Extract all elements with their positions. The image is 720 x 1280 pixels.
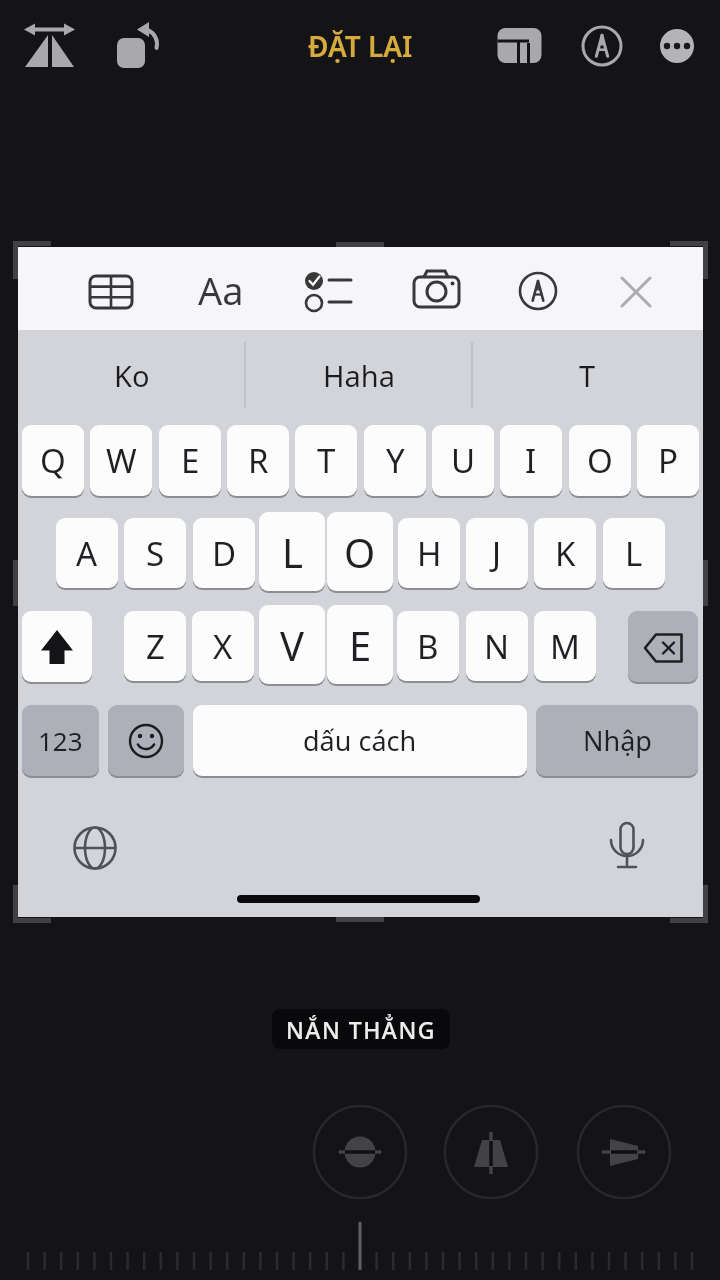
button[interactable] xyxy=(303,270,353,314)
button[interactable]: P xyxy=(637,425,699,496)
staticText: B xyxy=(417,624,439,669)
staticText: W xyxy=(106,438,137,483)
button[interactable] xyxy=(22,611,92,682)
staticText: L xyxy=(282,525,303,579)
staticText: J xyxy=(492,531,502,576)
button[interactable] xyxy=(618,274,654,310)
button[interactable]: Z xyxy=(124,611,186,681)
staticText: Aa xyxy=(198,264,244,316)
staticText: K xyxy=(555,531,576,576)
staticText: L xyxy=(625,531,643,576)
button[interactable] xyxy=(494,22,542,68)
button[interactable] xyxy=(20,20,78,72)
staticText: Haha xyxy=(323,356,395,395)
staticText: I xyxy=(525,438,537,483)
button[interactable]: B xyxy=(397,611,459,681)
button[interactable]: A xyxy=(56,518,118,588)
staticText: Q xyxy=(40,438,66,483)
button[interactable]: O xyxy=(569,425,631,496)
staticText: NẮN THẲNG xyxy=(286,1014,437,1045)
staticText: A xyxy=(76,531,98,576)
button[interactable]: U xyxy=(432,425,494,496)
staticText: ĐẶT LẠI xyxy=(308,27,413,65)
button[interactable] xyxy=(518,271,558,311)
button[interactable] xyxy=(88,272,134,312)
staticText: P xyxy=(658,438,678,483)
staticText: R xyxy=(248,438,269,483)
staticText: T xyxy=(317,438,336,483)
button[interactable] xyxy=(628,611,698,682)
button[interactable] xyxy=(582,26,622,66)
button[interactable]: NẮN THẲNG xyxy=(272,1009,450,1049)
button[interactable]: K xyxy=(534,518,596,588)
staticText: X xyxy=(213,624,233,669)
button[interactable]: E xyxy=(159,425,221,496)
button[interactable]: M xyxy=(534,611,596,681)
button[interactable]: dấu cách xyxy=(193,705,527,776)
button[interactable]: Ko xyxy=(18,330,245,420)
staticText: O xyxy=(344,525,376,579)
button[interactable]: J xyxy=(466,518,528,588)
staticText: N xyxy=(484,624,510,669)
staticText: H xyxy=(417,531,442,576)
button[interactable]: Nhập xyxy=(536,705,698,776)
button[interactable]: Y xyxy=(364,425,426,496)
button[interactable]: E xyxy=(327,605,393,684)
staticText: dấu cách xyxy=(303,722,417,759)
button[interactable]: S xyxy=(124,518,186,588)
staticText: Nhập xyxy=(583,722,652,759)
staticText: E xyxy=(181,438,200,483)
staticText: M xyxy=(550,624,580,669)
button[interactable] xyxy=(578,1106,670,1198)
button[interactable]: T xyxy=(472,330,703,420)
button[interactable] xyxy=(445,1106,537,1198)
button[interactable] xyxy=(314,1106,406,1198)
button[interactable] xyxy=(110,20,162,72)
button[interactable]: L xyxy=(259,512,325,591)
button[interactable] xyxy=(605,820,649,870)
staticText: U xyxy=(451,438,476,483)
button[interactable] xyxy=(72,825,118,871)
button[interactable]: ĐẶT LẠI xyxy=(280,26,440,66)
staticText: V xyxy=(280,618,304,672)
button[interactable] xyxy=(659,28,695,64)
staticText: T xyxy=(579,356,596,395)
button[interactable] xyxy=(108,705,184,776)
button[interactable]: R xyxy=(227,425,289,496)
staticText: Z xyxy=(146,624,165,669)
button[interactable]: I xyxy=(500,425,562,496)
staticText: 123 xyxy=(38,723,83,758)
button[interactable]: V xyxy=(259,605,325,684)
staticText: S xyxy=(146,531,165,576)
button[interactable]: T xyxy=(295,425,357,496)
button[interactable] xyxy=(412,268,461,310)
staticText: E xyxy=(349,618,372,672)
button[interactable]: L xyxy=(603,518,665,588)
button[interactable]: O xyxy=(327,512,393,591)
button[interactable]: D xyxy=(193,518,255,588)
staticText: D xyxy=(212,531,237,576)
button[interactable]: Aa xyxy=(186,262,256,318)
staticText: Ko xyxy=(114,356,150,395)
button[interactable]: 123 xyxy=(22,705,99,776)
button[interactable]: N xyxy=(466,611,528,681)
button[interactable]: X xyxy=(192,611,254,681)
button[interactable]: W xyxy=(90,425,152,496)
staticText: O xyxy=(587,438,613,483)
staticText: Y xyxy=(386,438,405,483)
button[interactable]: Q xyxy=(22,425,84,496)
button[interactable]: Haha xyxy=(245,330,472,420)
button[interactable]: H xyxy=(398,518,460,588)
